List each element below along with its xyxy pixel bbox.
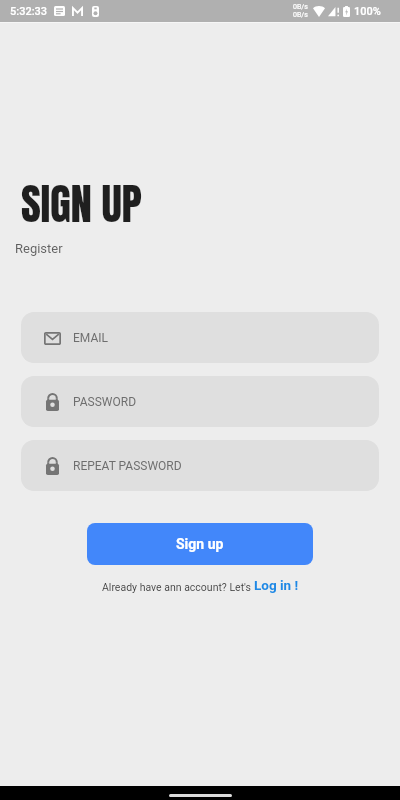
staticText: 100% (354, 5, 381, 18)
staticText: EMAIL (73, 331, 108, 345)
staticText: REPEAT PASSWORD (73, 459, 182, 473)
staticText: SIGN UP (21, 171, 142, 236)
staticText: Log in ! (254, 577, 299, 593)
staticText: Register (15, 241, 63, 256)
staticText: 5:32:33 (10, 5, 48, 18)
button[interactable]: REPEAT PASSWORD (21, 440, 379, 491)
button[interactable]: Log in ! (254, 577, 299, 593)
staticText: Already have ann account? Let's (102, 581, 251, 593)
staticText: PASSWORD (73, 395, 137, 409)
button[interactable]: EMAIL (21, 312, 379, 363)
button[interactable]: PASSWORD (21, 376, 379, 427)
staticText: 0B/s (293, 11, 308, 19)
staticText: 0B/s (293, 3, 308, 11)
button[interactable]: Sign up (87, 523, 313, 565)
staticText: Sign up (176, 536, 224, 552)
